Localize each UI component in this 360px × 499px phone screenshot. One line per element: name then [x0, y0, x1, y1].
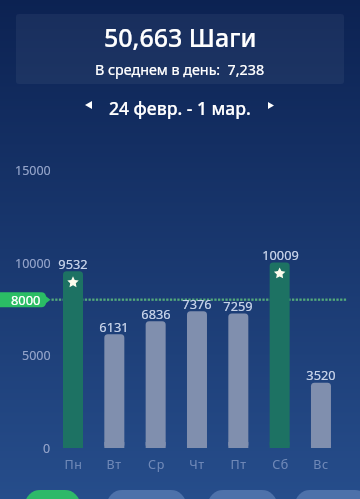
staticText: 7259 [223, 297, 253, 314]
staticText: Вс [313, 456, 329, 473]
staticText: 10009 [262, 246, 299, 263]
staticText: 24 февр. - 1 мар. [109, 96, 251, 120]
staticText: Ср [148, 456, 165, 473]
staticText: 8000 [11, 291, 41, 307]
button[interactable]: 24 февр. - 1 мар. [0, 96, 360, 120]
staticText: Пт [230, 456, 247, 473]
staticText: 5000 [22, 347, 51, 363]
staticText: Чт [189, 456, 205, 473]
button[interactable]: 50,663 Шаги [16, 14, 344, 84]
button[interactable] [208, 490, 277, 499]
staticText: 0 [43, 440, 51, 456]
staticText: 7376 [182, 295, 212, 312]
staticText: Сб [272, 456, 289, 473]
button[interactable]: Предыдущая неделя [76, 93, 100, 117]
button[interactable] [295, 490, 360, 499]
staticText: В среднем в день: 7,238 [95, 60, 265, 79]
button[interactable] [107, 490, 186, 499]
staticText: 6131 [99, 318, 129, 335]
staticText: Пн [64, 456, 83, 473]
staticText: 9532 [58, 255, 88, 272]
button[interactable] [25, 490, 80, 499]
staticText: 15000 [15, 162, 51, 178]
staticText: 6836 [141, 305, 171, 322]
button[interactable]: Следующая неделя [259, 93, 283, 117]
staticText: 10000 [15, 255, 51, 271]
staticText: 50,663 Шаги [104, 20, 257, 54]
staticText: Вт [106, 456, 122, 473]
staticText: 3520 [306, 366, 336, 383]
